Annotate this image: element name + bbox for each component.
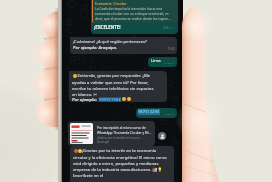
staticText: 987512290 — [138, 109, 160, 115]
button[interactable]: Entiendo, gracias por responder. ¿Me ayu… — [69, 71, 167, 102]
staticText: Por ejemplo: Arequipa. — [73, 45, 118, 51]
staticText: Pre inscripción al micro curso de WhatsA… — [97, 126, 153, 135]
staticText: ¡Gracias por tu interés en la economía c… — [73, 148, 168, 178]
button[interactable]: 987512290 — [136, 108, 177, 118]
button[interactable]: Pre inscripción al micro curso de WhatsA… — [68, 121, 155, 146]
button[interactable]: Lima — [148, 57, 177, 67]
staticText: Economía Circular — [95, 1, 127, 6]
staticText: Lima — [151, 58, 161, 64]
staticText: 10:42 ✓✓ — [164, 61, 175, 64]
staticText: ¡Gracias por tu interés en la curso... — [97, 136, 142, 140]
button[interactable]: Profile photo — [158, 132, 166, 140]
button[interactable]: Economía Circular — [91, 0, 178, 34]
staticText: 999917384 — [99, 97, 121, 102]
staticText: 10:43 ✓✓ — [164, 112, 175, 115]
staticText: ¡EXCELENTE! — [94, 24, 121, 30]
button[interactable]: ¡Cuéntame! ¿A qué región perteneces? — [70, 37, 177, 54]
staticText: La Coalición impulsa la transición hacia… — [95, 6, 175, 21]
staticText: Entiendo, gracias por responder. ¿Me ayu… — [72, 73, 159, 97]
staticText: 10:41 ✓✓ — [163, 26, 175, 30]
staticText: Por ejemplo: — [72, 97, 99, 102]
staticText: forms.gle — [97, 140, 110, 144]
staticText: 10:42 — [168, 47, 175, 51]
button[interactable]: ¡Gracias por tu interés en la economía c… — [70, 146, 174, 182]
staticText: ¡Cuéntame! ¿A qué región perteneces? — [73, 39, 147, 45]
